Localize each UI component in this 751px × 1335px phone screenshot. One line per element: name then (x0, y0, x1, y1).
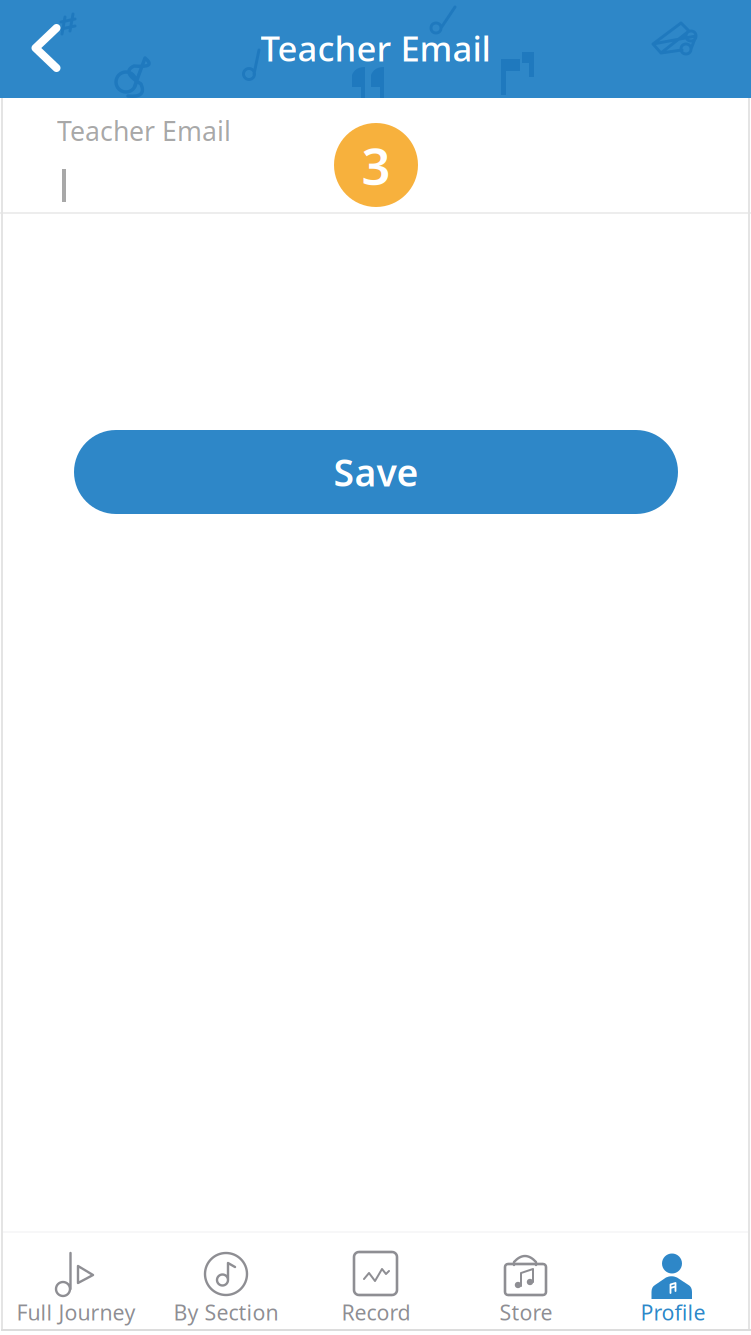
staticText: Full Journey (16, 1298, 135, 1326)
button[interactable]: Store (451, 1232, 601, 1335)
staticText: Teacher Email (57, 113, 231, 148)
button[interactable]: Profile (598, 1232, 748, 1335)
staticText: 3 (361, 131, 390, 199)
button[interactable]: Back (0, 0, 92, 96)
staticText: Store (499, 1298, 552, 1326)
staticText: By Section (173, 1298, 278, 1326)
staticText: Save (333, 447, 418, 497)
staticText: Profile (640, 1298, 705, 1326)
staticText: Record (341, 1298, 410, 1326)
button[interactable]: Save (74, 430, 678, 514)
button[interactable]: Full Journey (1, 1232, 151, 1335)
staticText: Teacher Email (260, 25, 490, 71)
button[interactable]: Record (301, 1232, 451, 1335)
button[interactable]: By Section (151, 1232, 301, 1335)
